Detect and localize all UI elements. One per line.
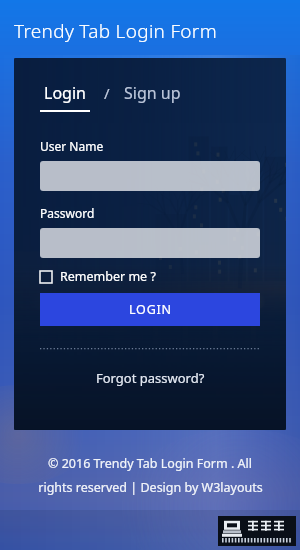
staticText: Login (44, 82, 86, 104)
button[interactable] (40, 228, 260, 258)
staticText: User Name (40, 138, 104, 154)
button[interactable] (40, 161, 260, 191)
staticText: Password (40, 205, 95, 221)
staticText: Sign up (124, 82, 181, 104)
staticText: © 2016 Trendy Tab Login Form . All (48, 455, 252, 472)
staticText: / (104, 83, 110, 103)
staticText: Trendy Tab Login Form (14, 18, 217, 44)
staticText: Forgot password? (96, 369, 205, 387)
button[interactable]: Remember me ? (40, 268, 156, 285)
button[interactable]: Sign up (124, 82, 181, 104)
button[interactable]: Login (44, 82, 86, 104)
staticText: LOGIN (129, 301, 172, 318)
staticText: Remember me ? (60, 268, 156, 285)
button[interactable]: LOGIN (40, 293, 260, 326)
staticText: rights reserved | Design by W3layouts (38, 479, 263, 496)
button[interactable]: Forgot password? (96, 369, 205, 387)
